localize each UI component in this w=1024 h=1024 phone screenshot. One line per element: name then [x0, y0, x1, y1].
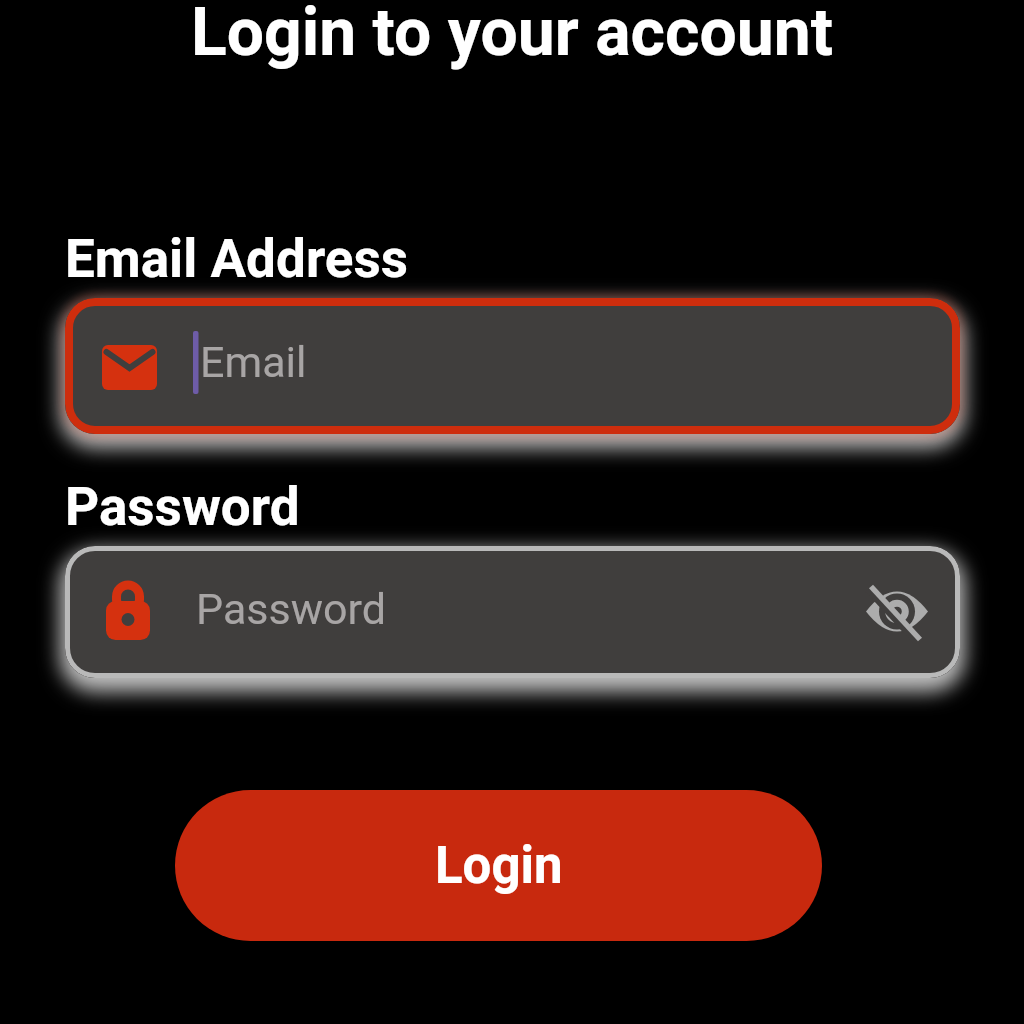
- staticText: Login to your account: [0, 0, 1024, 71]
- staticText: Login: [435, 836, 563, 896]
- button[interactable]: [856, 572, 936, 652]
- staticText: Password: [196, 584, 386, 634]
- button[interactable]: Email: [65, 298, 960, 434]
- staticText: Email: [200, 337, 307, 387]
- staticText: Email Address: [65, 228, 408, 290]
- button[interactable]: Login: [175, 790, 822, 941]
- staticText: Password: [65, 476, 300, 538]
- button[interactable]: Password: [65, 546, 960, 678]
